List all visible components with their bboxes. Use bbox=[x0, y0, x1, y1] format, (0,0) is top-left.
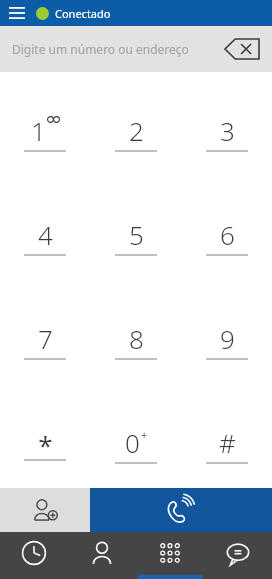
button[interactable]: 3 bbox=[181, 72, 272, 176]
button[interactable]: # bbox=[181, 384, 272, 488]
staticText: 2 bbox=[129, 113, 144, 148]
button[interactable]: 1 bbox=[0, 72, 90, 176]
staticText: + bbox=[141, 427, 148, 442]
staticText: Conectado bbox=[55, 6, 111, 21]
button[interactable]: Messages bbox=[204, 532, 272, 579]
button[interactable]: Menu bbox=[6, 2, 28, 24]
button[interactable]: 7 bbox=[0, 280, 90, 384]
staticText: Digite um número ou endereço bbox=[12, 41, 189, 57]
button[interactable]: 2 bbox=[90, 72, 181, 176]
staticText: 6 bbox=[220, 217, 235, 252]
staticText: 3 bbox=[220, 113, 235, 148]
button[interactable]: 0 bbox=[90, 384, 181, 488]
button[interactable]: Call bbox=[90, 488, 272, 532]
button[interactable]: Contacts bbox=[68, 532, 136, 579]
staticText: 1 bbox=[31, 113, 46, 148]
button[interactable]: 5 bbox=[90, 176, 181, 280]
button[interactable]: 9 bbox=[181, 280, 272, 384]
staticText: 7 bbox=[38, 321, 53, 356]
button[interactable]: Dialpad bbox=[136, 532, 204, 579]
button[interactable]: Add contact bbox=[0, 488, 90, 532]
staticText: 8 bbox=[129, 321, 144, 356]
staticText: 5 bbox=[129, 217, 144, 252]
staticText: 0 bbox=[125, 425, 140, 460]
staticText: 9 bbox=[220, 321, 235, 356]
button[interactable]: 4 bbox=[0, 176, 90, 280]
button[interactable]: * bbox=[0, 384, 90, 488]
button[interactable]: Recents bbox=[0, 532, 68, 579]
button[interactable]: Backspace bbox=[220, 34, 264, 64]
staticText: # bbox=[219, 425, 236, 460]
button[interactable]: 6 bbox=[181, 176, 272, 280]
button[interactable]: 8 bbox=[90, 280, 181, 384]
staticText: 4 bbox=[38, 217, 53, 252]
staticText: * bbox=[38, 427, 53, 457]
